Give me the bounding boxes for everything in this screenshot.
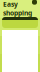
button[interactable]: Profile (32, 0, 37, 5)
staticText: Easy shopping (3, 0, 32, 17)
